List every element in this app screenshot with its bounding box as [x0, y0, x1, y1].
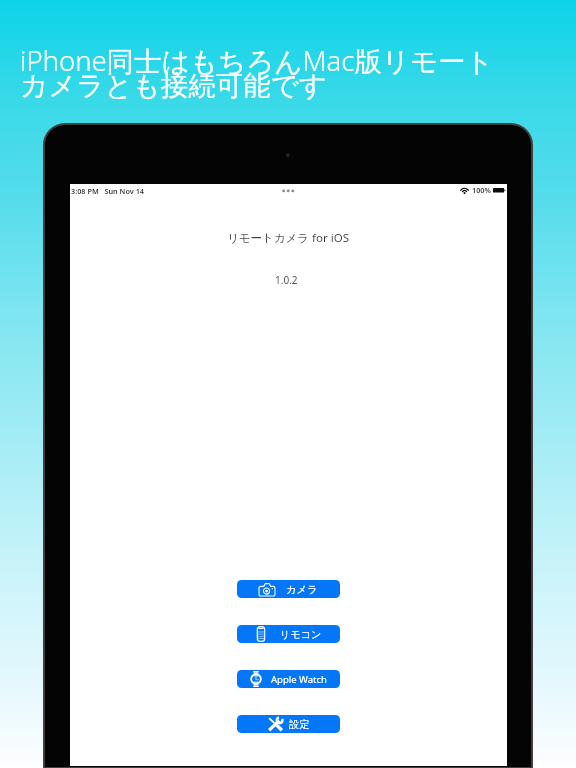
staticText: リモートカメラ for iOS: [227, 230, 350, 246]
staticText: カメラとも接続可能です: [20, 69, 328, 104]
staticText: 100%: [472, 185, 491, 195]
button[interactable]: Camera: [237, 580, 340, 598]
staticText: 3:08 PM Sun Nov 14: [71, 186, 144, 196]
staticText: リモコン: [280, 628, 322, 641]
button[interactable]: Settings: [237, 715, 340, 733]
button[interactable]: Apple Watch: [237, 670, 340, 688]
staticText: カメラ: [286, 583, 318, 596]
button[interactable]: Remote control: [237, 625, 340, 643]
staticText: 1.0.2: [275, 273, 298, 287]
staticText: 設定: [289, 718, 310, 731]
staticText: iPhone同士はもちろんMac版リモート: [20, 42, 494, 80]
staticText: Apple Watch: [271, 673, 327, 686]
